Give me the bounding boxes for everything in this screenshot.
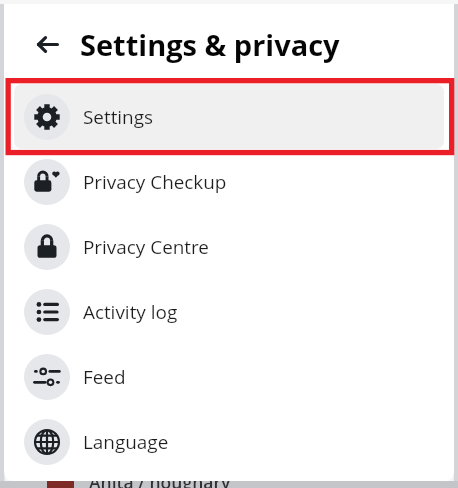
button[interactable]: Settings <box>14 84 444 149</box>
staticText: Activity log <box>83 299 178 325</box>
button[interactable]: Activity log <box>14 279 444 344</box>
staticText: Settings & privacy <box>80 25 340 64</box>
staticText: Language <box>83 429 169 455</box>
staticText: Settings <box>83 104 154 130</box>
staticText: Privacy Checkup <box>83 169 227 195</box>
staticText: Privacy Centre <box>83 234 209 260</box>
button[interactable]: Language <box>14 409 444 474</box>
staticText: Feed <box>83 364 126 390</box>
button[interactable]: Back <box>37 33 59 55</box>
button[interactable]: Privacy Checkup <box>14 149 444 214</box>
button[interactable]: Privacy Centre <box>14 214 444 279</box>
staticText: Anita / nougnary <box>89 470 231 488</box>
button[interactable]: Feed <box>14 344 444 409</box>
